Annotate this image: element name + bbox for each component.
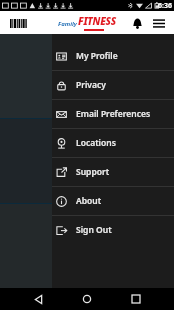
staticText: Support <box>76 166 110 178</box>
button[interactable]: Deals <box>0 119 174 203</box>
staticText: Privacy <box>76 79 106 91</box>
staticText: About <box>76 195 102 207</box>
button[interactable]: Membership barcode <box>7 15 29 31</box>
staticText: FITNESS <box>78 14 116 28</box>
button[interactable]: Privacy <box>52 71 174 99</box>
button[interactable]: Email Preferences <box>52 100 174 128</box>
button[interactable]: Sign Out <box>52 216 174 244</box>
staticText: My Profile <box>76 50 118 62</box>
staticText: 6:36 <box>158 1 172 11</box>
button[interactable]: Locations <box>52 129 174 157</box>
staticText: Email Preferences <box>76 108 151 120</box>
button[interactable]: Support <box>52 158 174 186</box>
button[interactable]: Recents <box>125 288 147 310</box>
button[interactable]: Record a W <box>0 204 174 288</box>
staticText: Find a Cl <box>70 90 104 101</box>
button[interactable]: Home <box>76 288 98 310</box>
button[interactable]: Find a Cl <box>0 34 174 118</box>
staticText: Deals <box>76 175 98 186</box>
button[interactable]: My Profile <box>52 42 174 70</box>
button[interactable]: Menu <box>149 13 169 33</box>
button[interactable]: About <box>52 187 174 215</box>
staticText: Family <box>58 20 77 28</box>
staticText: Locations <box>76 137 116 149</box>
staticText: Sign Out <box>76 224 112 236</box>
button[interactable]: Notifications <box>128 14 146 32</box>
button[interactable]: Back <box>27 288 49 310</box>
